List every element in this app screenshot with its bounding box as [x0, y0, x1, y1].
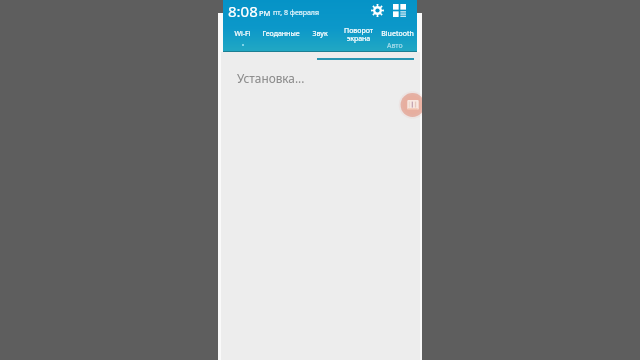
- button[interactable]: 8:08: [228, 1, 316, 21]
- staticText: Геоданные: [262, 29, 300, 39]
- staticText: PM: [259, 8, 271, 18]
- button[interactable]: Settings: [369, 2, 386, 19]
- staticText: Авто: [387, 41, 403, 51]
- staticText: Wi-Fi: [234, 29, 251, 39]
- staticText: Поворот экрана: [344, 26, 373, 43]
- button[interactable]: Bluetooth: [378, 23, 417, 45]
- staticText: Установка...: [237, 70, 305, 86]
- button[interactable]: Quick settings panel: [392, 3, 407, 18]
- staticText: пт, 8 февраля: [273, 8, 319, 18]
- button[interactable]: Поворот экрана: [339, 23, 378, 45]
- button[interactable]: Wi-Fi: [223, 23, 261, 45]
- button[interactable]: Collapse notification shade: [311, 50, 421, 60]
- staticText: Bluetooth: [381, 29, 414, 39]
- button[interactable]: Геоданные: [261, 23, 300, 45]
- button[interactable]: Звук: [300, 23, 339, 45]
- staticText: Звук: [312, 29, 328, 39]
- staticText: 8:08: [228, 1, 258, 21]
